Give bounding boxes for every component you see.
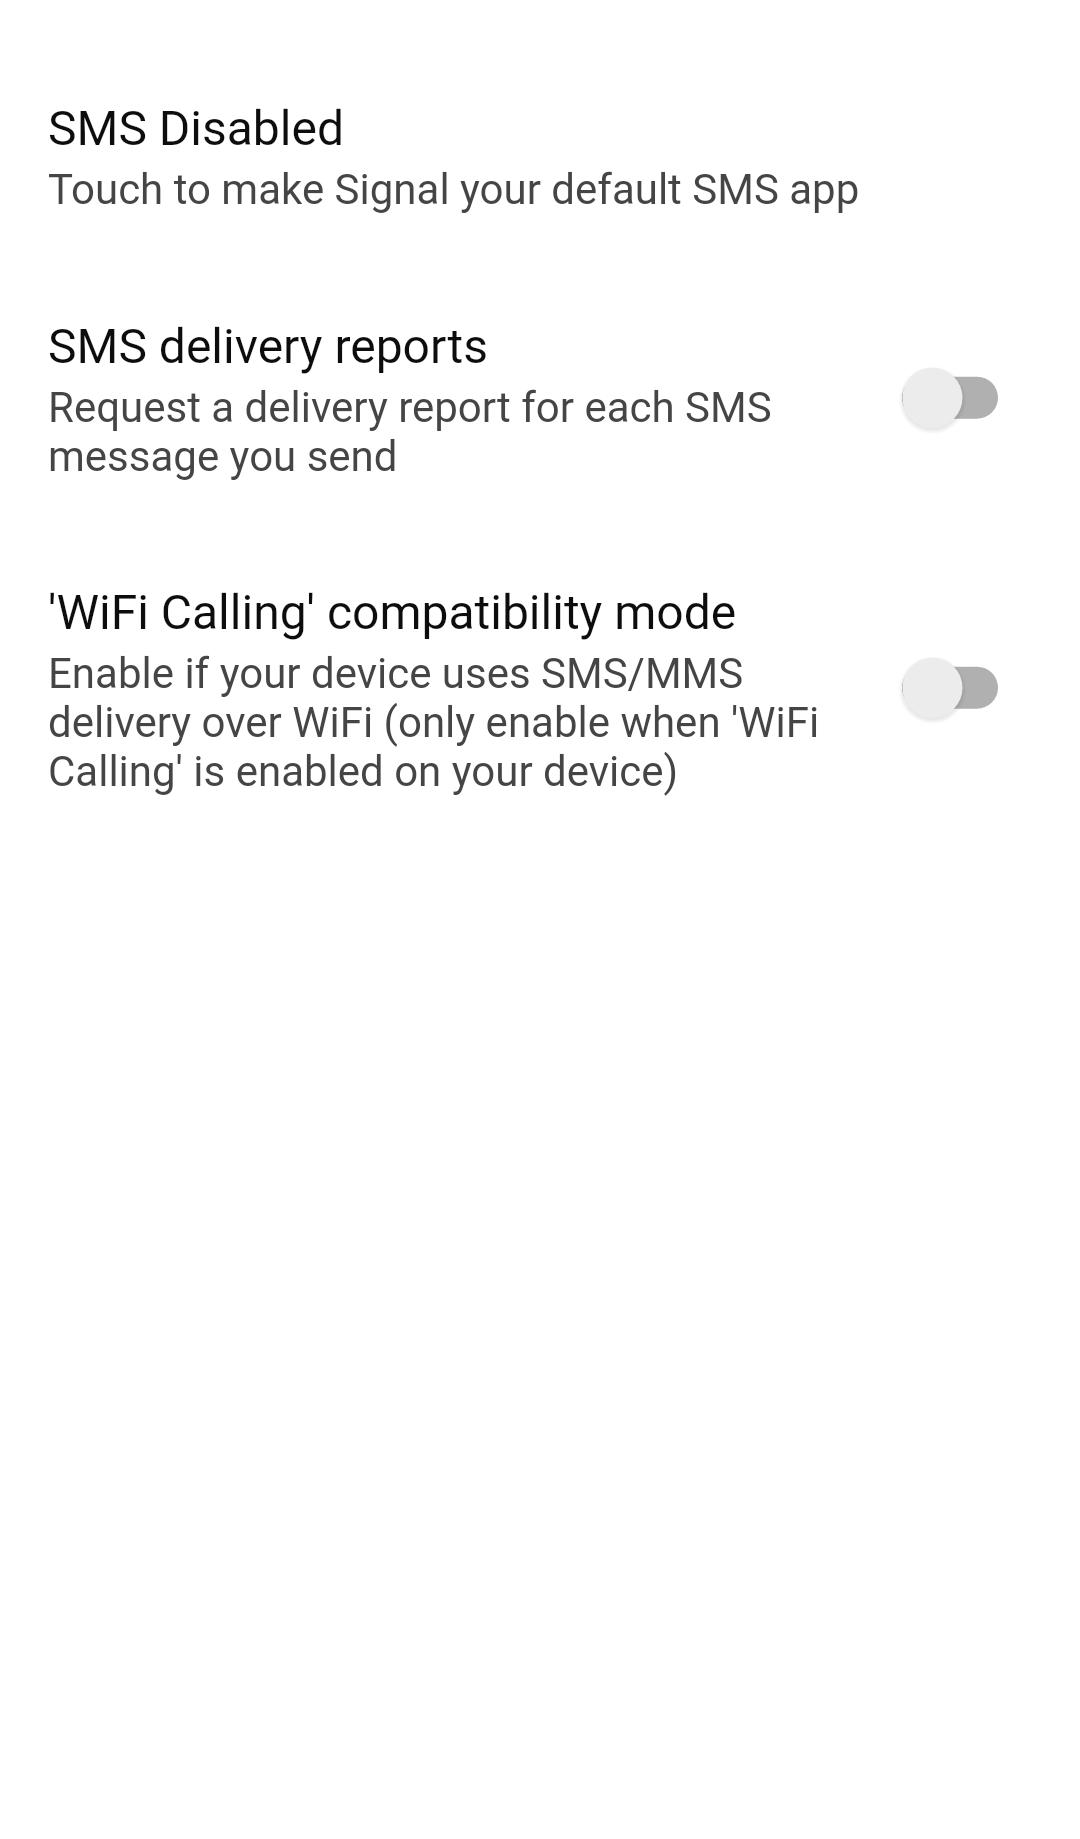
staticText: SMS Disabled (48, 100, 345, 156)
button[interactable]: 'WiFi Calling' compatibility mode (0, 584, 1080, 796)
staticText: SMS delivery reports (48, 318, 488, 374)
button[interactable]: SMS delivery reports (0, 318, 1080, 481)
staticText: 'WiFi Calling' compatibility mode (48, 584, 737, 640)
button[interactable]: Toggle 'WiFi Calling' compatibility mode (900, 635, 1080, 745)
staticText: Enable if your device uses SMS/MMS deliv… (48, 649, 820, 796)
button[interactable]: Toggle SMS delivery reports (900, 345, 1080, 455)
staticText: Touch to make Signal your default SMS ap… (48, 165, 860, 214)
staticText: Request a delivery report for each SMS m… (48, 383, 772, 481)
button[interactable]: SMS Disabled (0, 100, 1080, 214)
